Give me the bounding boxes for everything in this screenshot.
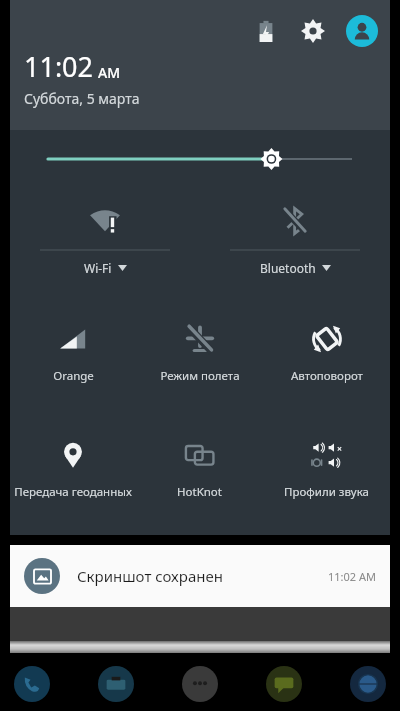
button[interactable]: Close shade xyxy=(10,641,390,653)
button[interactable]: 11:02 xyxy=(24,48,140,108)
staticText: 11:02 xyxy=(24,48,94,85)
button[interactable]: Передача геоданных xyxy=(10,411,136,527)
staticText: Wi-Fi xyxy=(84,260,112,276)
button[interactable] xyxy=(98,666,134,702)
staticText: Скриншот сохранен xyxy=(77,566,328,586)
button[interactable] xyxy=(350,666,386,702)
staticText: Суббота, 5 марта xyxy=(24,89,140,108)
staticText: Режим полета xyxy=(160,368,240,384)
button[interactable]: Settings xyxy=(296,14,330,48)
button[interactable] xyxy=(182,666,218,702)
button[interactable] xyxy=(14,666,50,702)
staticText: Orange xyxy=(53,368,94,384)
button[interactable] xyxy=(266,666,302,702)
staticText: AM xyxy=(98,63,121,82)
staticText: Автоповорот xyxy=(291,368,363,384)
button[interactable]: Режим полета xyxy=(136,296,263,411)
button[interactable]: Автоповорот xyxy=(263,296,390,411)
button[interactable]: Профили звука xyxy=(263,411,390,527)
button[interactable]: Battery charging xyxy=(250,15,282,47)
button[interactable]: Wi-Fi xyxy=(10,188,200,296)
button[interactable]: Скриншот сохранен xyxy=(10,545,390,607)
button[interactable]: User profile xyxy=(346,15,378,47)
staticText: Профили звука xyxy=(284,484,369,500)
staticText: Передача геоданных xyxy=(14,484,132,500)
staticText: HotKnot xyxy=(177,484,222,500)
button[interactable]: Bluetooth xyxy=(200,188,390,296)
staticText: Bluetooth xyxy=(260,260,316,276)
button[interactable]: HotKnot xyxy=(136,411,263,527)
staticText: 11:02 AM xyxy=(328,569,376,584)
button[interactable]: Orange xyxy=(10,296,136,411)
button[interactable]: Brightness xyxy=(10,130,390,188)
